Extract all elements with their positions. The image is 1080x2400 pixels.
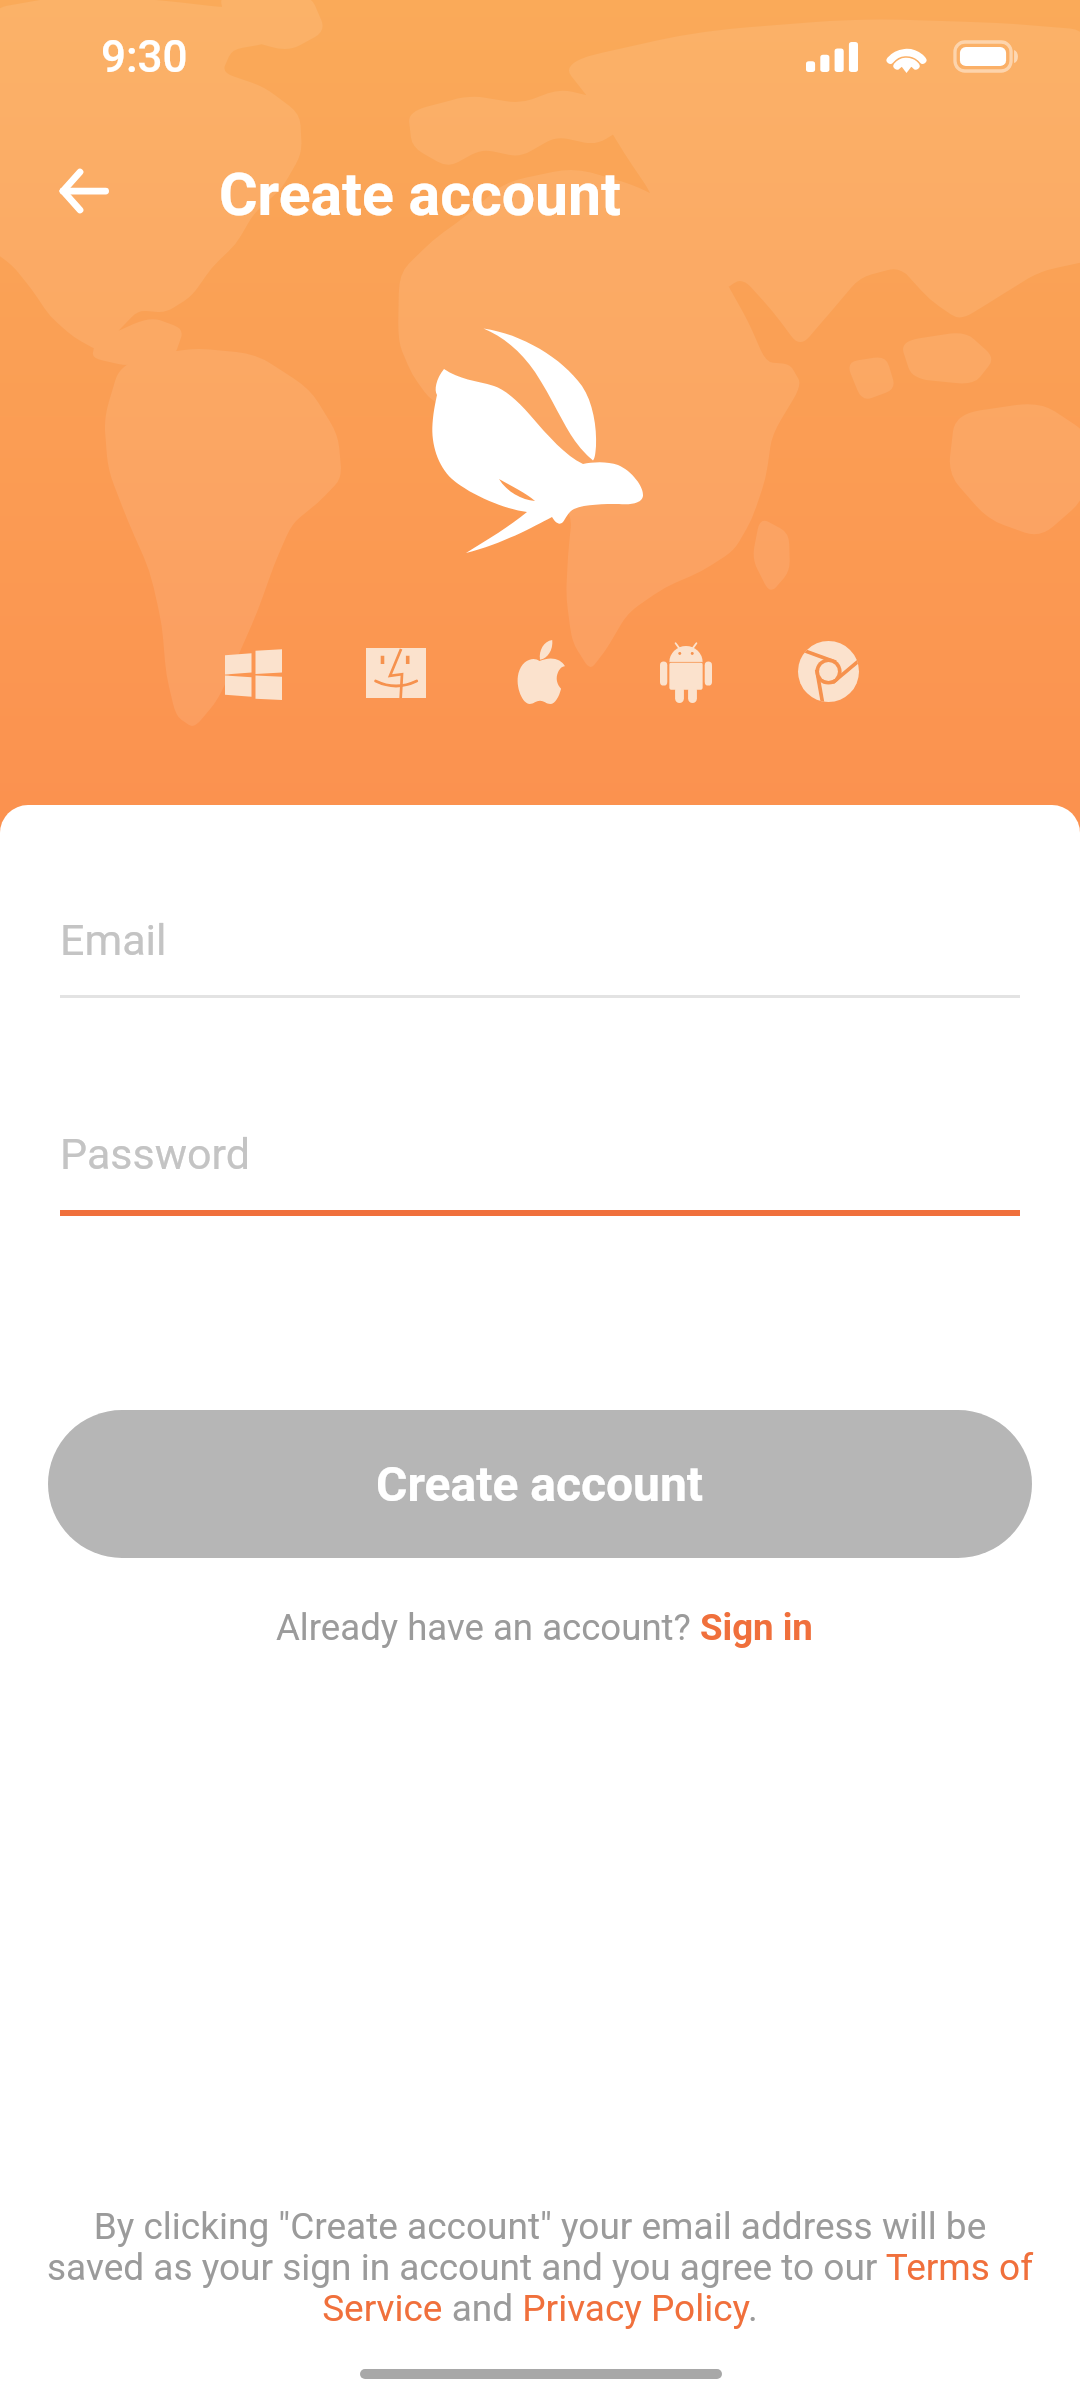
staticText: By clicking "Create account" your email … <box>44 2205 1036 2330</box>
button[interactable]: Back <box>36 143 132 239</box>
staticText: Already have an account? Sign in <box>276 1606 813 1649</box>
staticText: Email <box>60 915 167 965</box>
staticText: Password <box>60 1129 250 1179</box>
staticText: Create account <box>219 160 622 229</box>
staticText: 9:30 <box>101 31 188 83</box>
button[interactable]: Create account <box>48 1410 1032 1558</box>
button[interactable]: Already have an account? Sign in <box>264 1600 825 1655</box>
staticText: Create account <box>376 1456 704 1512</box>
